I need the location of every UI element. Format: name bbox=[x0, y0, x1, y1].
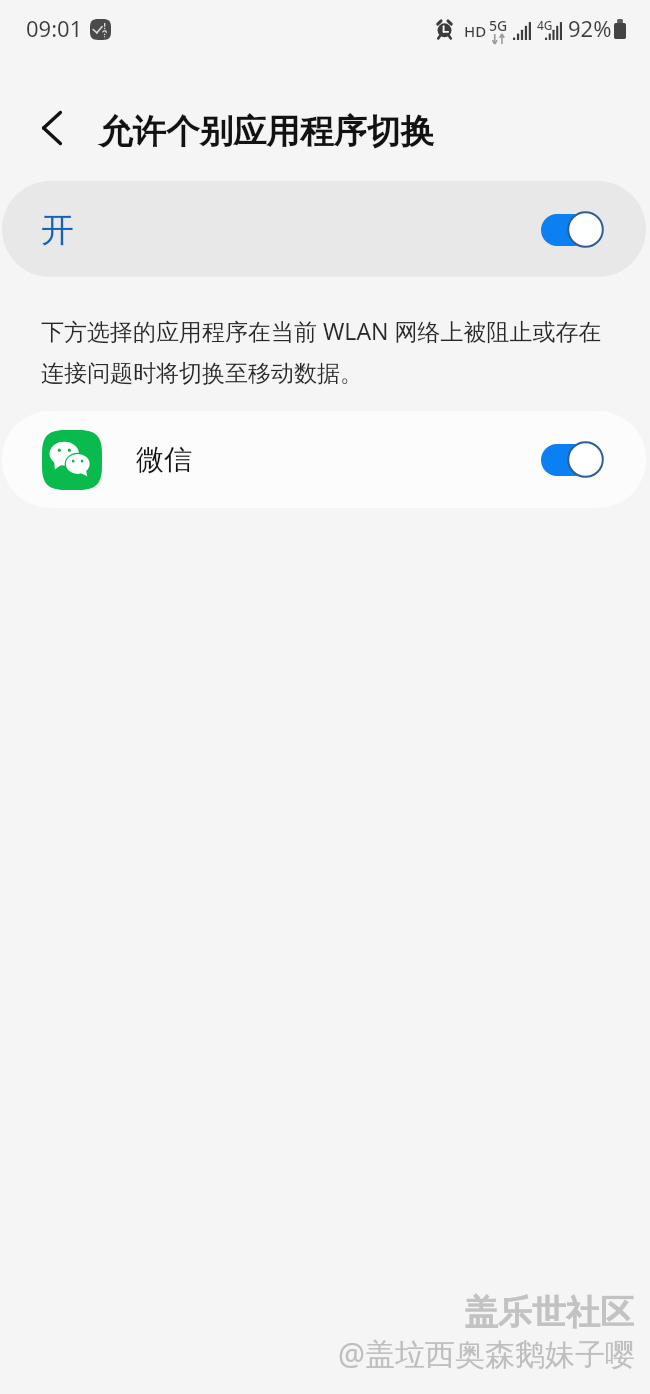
staticText: @盖垃西奥森鹅妹子嘤 bbox=[338, 1333, 635, 1374]
staticText: HD bbox=[464, 21, 487, 41]
staticText: 开 bbox=[41, 209, 74, 251]
staticText: 盖乐世社区 bbox=[464, 1291, 634, 1334]
staticText: 允许个别应用程序切换 bbox=[99, 111, 434, 153]
staticText: 5G bbox=[489, 16, 508, 35]
button[interactable]: 微信 bbox=[2, 411, 646, 508]
staticText: 微信 bbox=[136, 442, 192, 477]
button[interactable]: Turn off switching, currently on bbox=[541, 211, 604, 248]
staticText: 下方选择的应用程序在当前 WLAN 网络上被阻止或存在 连接问题时将切换至移动数… bbox=[41, 315, 602, 387]
button[interactable]: 开 bbox=[2, 181, 646, 277]
staticText: 92% bbox=[568, 13, 612, 43]
button[interactable]: WeChat switching, currently on bbox=[541, 441, 604, 478]
button[interactable]: Back bbox=[22, 98, 82, 158]
staticText: 09:01 bbox=[26, 13, 83, 43]
staticText: 4G bbox=[537, 17, 553, 33]
